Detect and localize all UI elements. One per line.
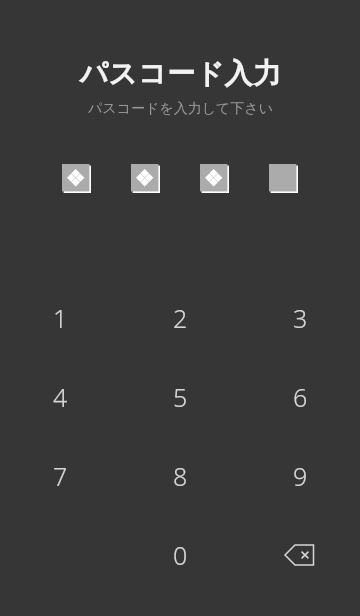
staticText: 6 [293,380,308,414]
staticText: 0 [173,538,188,572]
button[interactable] [200,164,229,193]
staticText: 7 [53,459,68,493]
staticText: 9 [293,459,308,493]
button[interactable]: 1 [0,278,120,357]
staticText: 1 [53,301,68,335]
staticText: 5 [173,380,188,414]
button[interactable]: 4 [0,357,120,436]
staticText: 4 [53,380,68,414]
button[interactable]: 3 [240,278,360,357]
button[interactable]: 0 [120,515,240,594]
button[interactable]: 8 [120,436,240,515]
button[interactable]: Delete [240,515,360,594]
button[interactable]: 6 [240,357,360,436]
staticText: 2 [173,301,188,335]
staticText: 3 [293,301,308,335]
staticText: 8 [173,459,188,493]
button[interactable]: 9 [240,436,360,515]
button[interactable] [131,164,160,193]
button[interactable]: 5 [120,357,240,436]
button[interactable]: 2 [120,278,240,357]
staticText: パスコードを入力して下さい [88,100,273,118]
staticText: パスコード入力 [79,56,282,91]
button[interactable] [62,164,91,193]
button[interactable]: 7 [0,436,120,515]
button[interactable] [269,164,298,193]
